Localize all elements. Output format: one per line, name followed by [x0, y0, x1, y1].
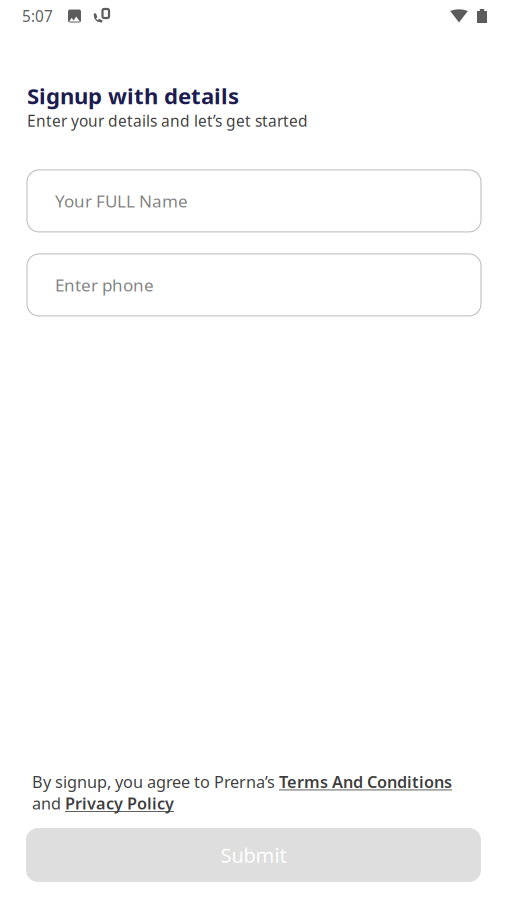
staticText: 5:07: [22, 6, 53, 26]
staticText: Enter phone: [55, 274, 154, 296]
staticText: Submit: [220, 842, 286, 868]
staticText: Terms And Conditions: [279, 771, 452, 792]
button[interactable]: Enter phone: [27, 254, 481, 316]
staticText: By signup, you agree to Prerna’s: [32, 771, 279, 792]
staticText: and: [32, 792, 65, 814]
button[interactable]: Submit: [26, 828, 481, 882]
button[interactable]: Terms And Conditions: [279, 771, 452, 792]
button[interactable]: Your FULL Name: [27, 170, 481, 232]
button[interactable]: Privacy Policy: [65, 792, 174, 814]
staticText: Signup with details: [27, 81, 239, 110]
staticText: Enter your details and let’s get started: [27, 110, 308, 131]
staticText: Privacy Policy: [65, 792, 174, 814]
staticText: Your FULL Name: [55, 190, 188, 212]
